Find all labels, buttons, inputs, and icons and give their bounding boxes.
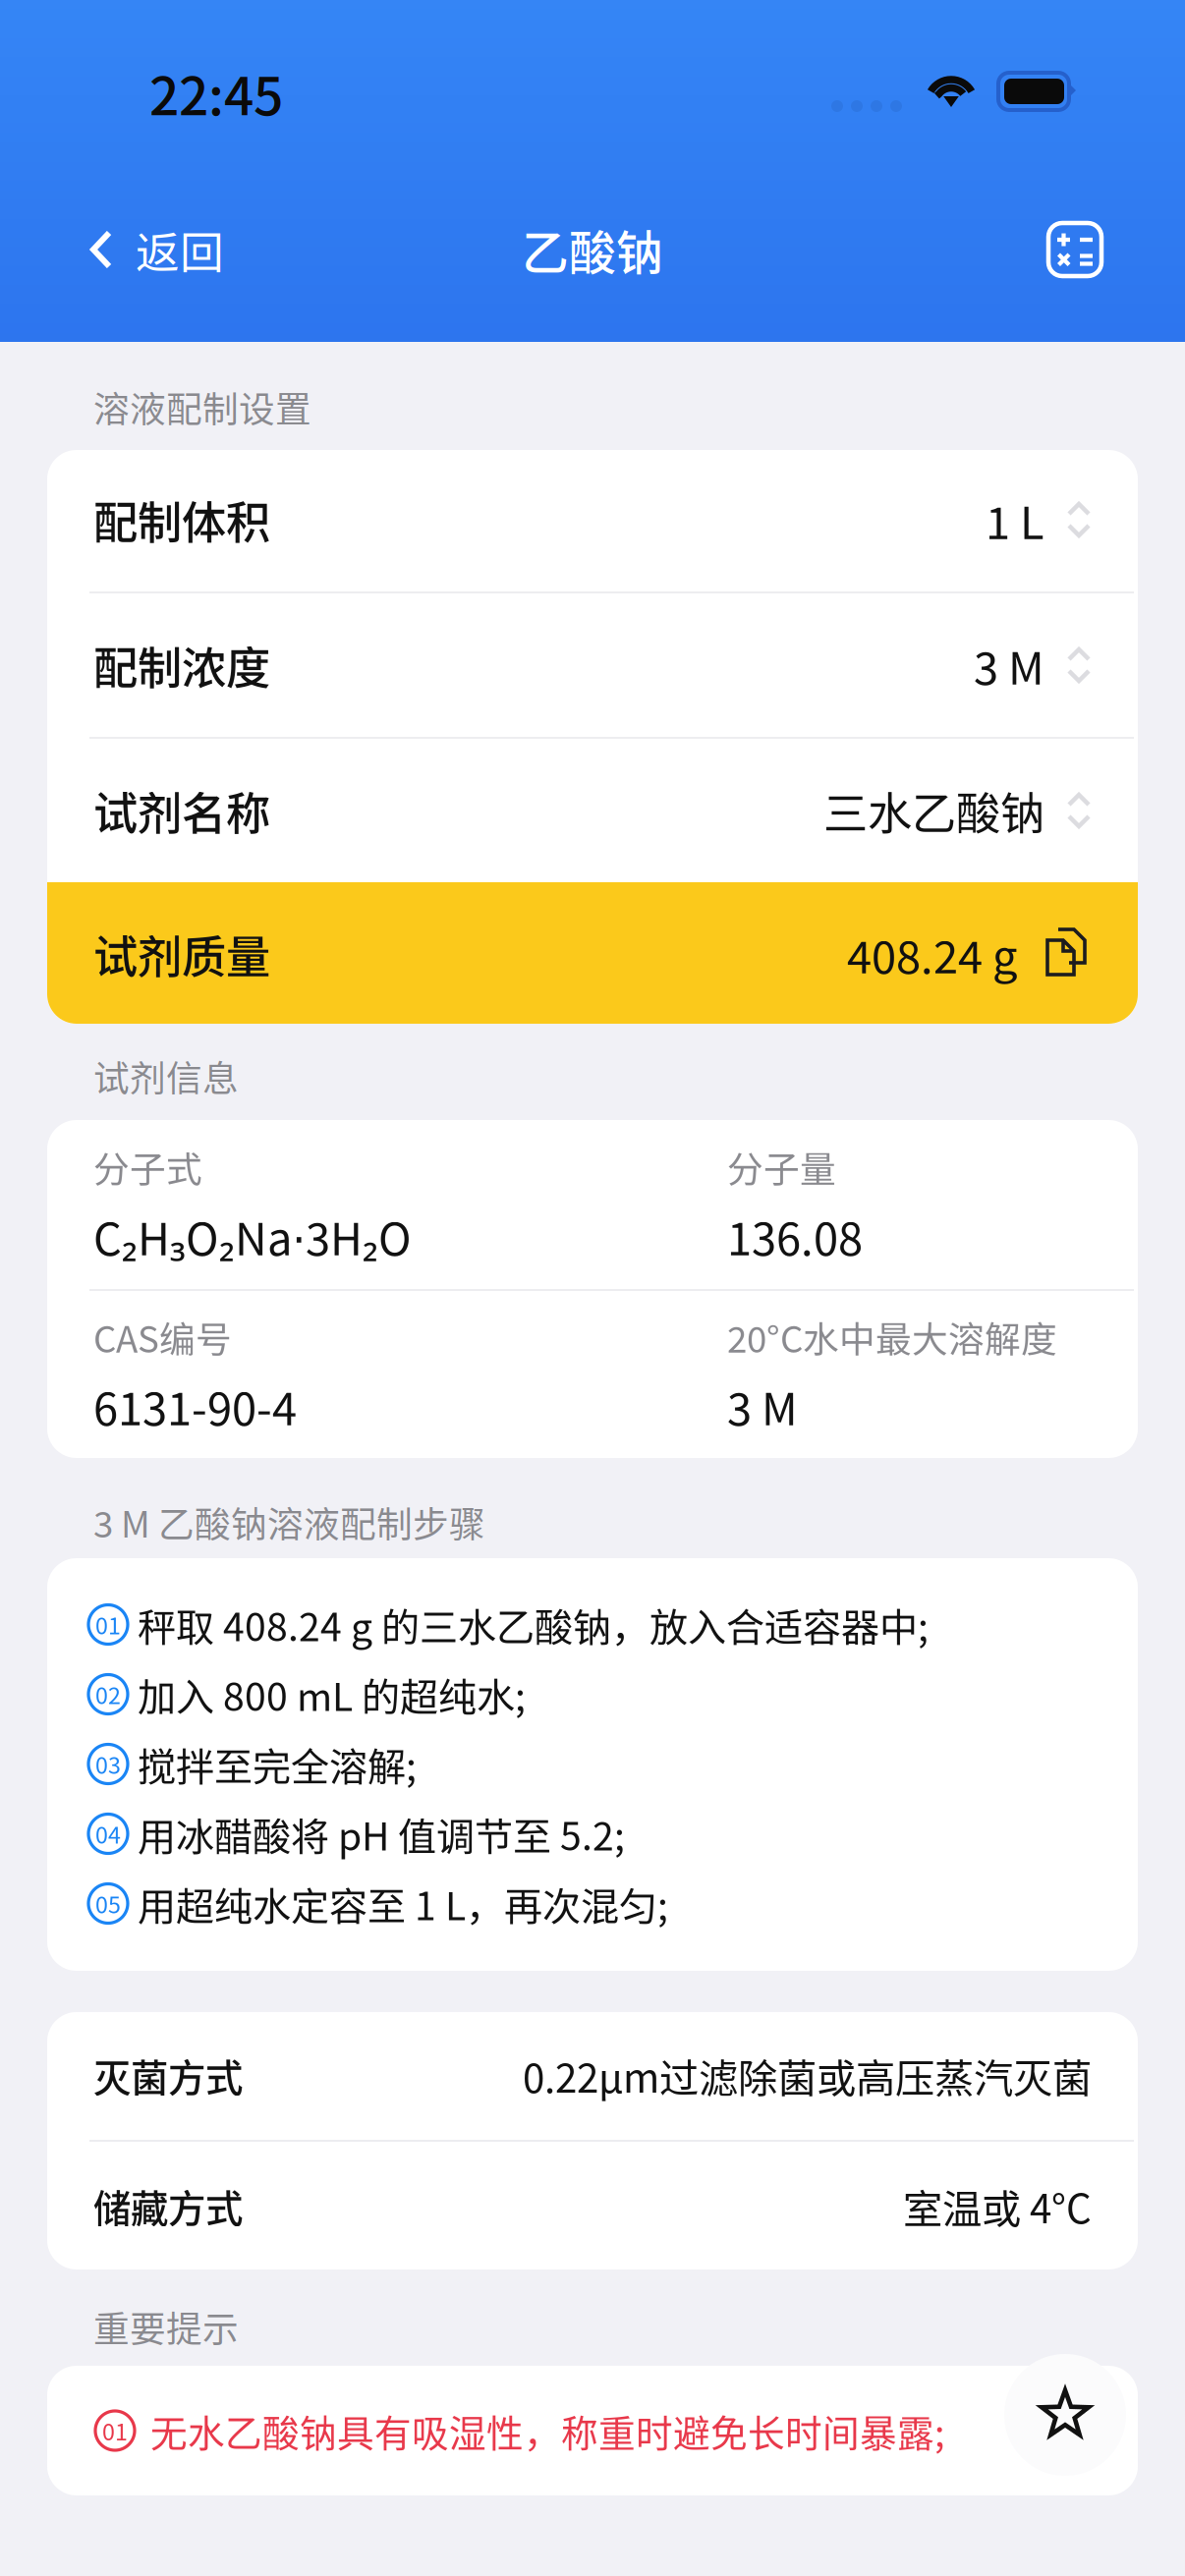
staticText: 返回 (136, 218, 224, 281)
staticText: 试剂信息 (93, 1050, 239, 1102)
staticText: 用冰醋酸将 pH 值调节至 5.2; (138, 1806, 625, 1862)
button[interactable]: 配制体积 (47, 448, 1138, 591)
staticText: 配制浓度 (93, 633, 270, 697)
staticText: 储藏方式 (93, 2179, 243, 2233)
staticText: 0.22μm过滤除菌或高压蒸汽灭菌 (523, 2047, 1092, 2104)
button[interactable]: 计算器 (1033, 196, 1185, 304)
staticText: 22:45 (149, 54, 283, 130)
staticText: 灭菌方式 (93, 2048, 243, 2103)
staticText: 04 (95, 1817, 121, 1850)
staticText: 02 (95, 1678, 121, 1711)
staticText: 加入 800 mL 的超纯水; (138, 1666, 526, 1722)
staticText: C₂H₃O₂Na⋅3H₂O (93, 1204, 412, 1268)
staticText: 用超纯水定容至 1 L，再次混匀; (138, 1876, 668, 1931)
staticText: 溶液配制设置 (93, 381, 311, 433)
staticText: 6131-90-4 (93, 1374, 297, 1438)
staticText: 03 (95, 1747, 121, 1781)
staticText: 乙酸钠 (522, 216, 663, 283)
staticText: 20°C水中最大溶解度 (727, 1311, 1057, 1363)
staticText: 01 (102, 2414, 128, 2447)
staticText: 1 L (986, 488, 1044, 552)
staticText: 无水乙酸钠具有吸湿性，称重时避免长时间暴露; (150, 2404, 944, 2457)
button[interactable]: 配制浓度 (47, 593, 1138, 737)
staticText: 重要提示 (93, 2300, 239, 2353)
staticText: 3 M (974, 633, 1044, 697)
staticText: 试剂质量 (93, 922, 270, 986)
button[interactable]: 收藏 (1004, 2354, 1126, 2476)
staticText: 3 M (727, 1374, 798, 1438)
staticText: 分子量 (727, 1141, 836, 1193)
button[interactable]: 试剂质量 (47, 882, 1138, 1026)
staticText: 配制体积 (93, 488, 270, 552)
staticText: 搅拌至完全溶解; (138, 1736, 417, 1792)
staticText: 秤取 408.24 g 的三水乙酸钠，放入合适容器中; (138, 1597, 929, 1652)
staticText: 408.24 g (847, 922, 1017, 986)
staticText: 试剂名称 (93, 778, 270, 843)
staticText: 01 (95, 1608, 121, 1641)
staticText: 三水乙酸钠 (823, 778, 1044, 843)
staticText: 136.08 (727, 1204, 863, 1268)
staticText: 05 (95, 1887, 121, 1920)
button[interactable]: 返回 (0, 196, 242, 304)
staticText: CAS编号 (93, 1311, 232, 1363)
staticText: 分子式 (93, 1141, 202, 1193)
button[interactable]: 试剂名称 (47, 739, 1138, 882)
staticText: 室温或 4°C (903, 2177, 1092, 2235)
staticText: 3 M 乙酸钠溶液配制步骤 (93, 1496, 485, 1548)
